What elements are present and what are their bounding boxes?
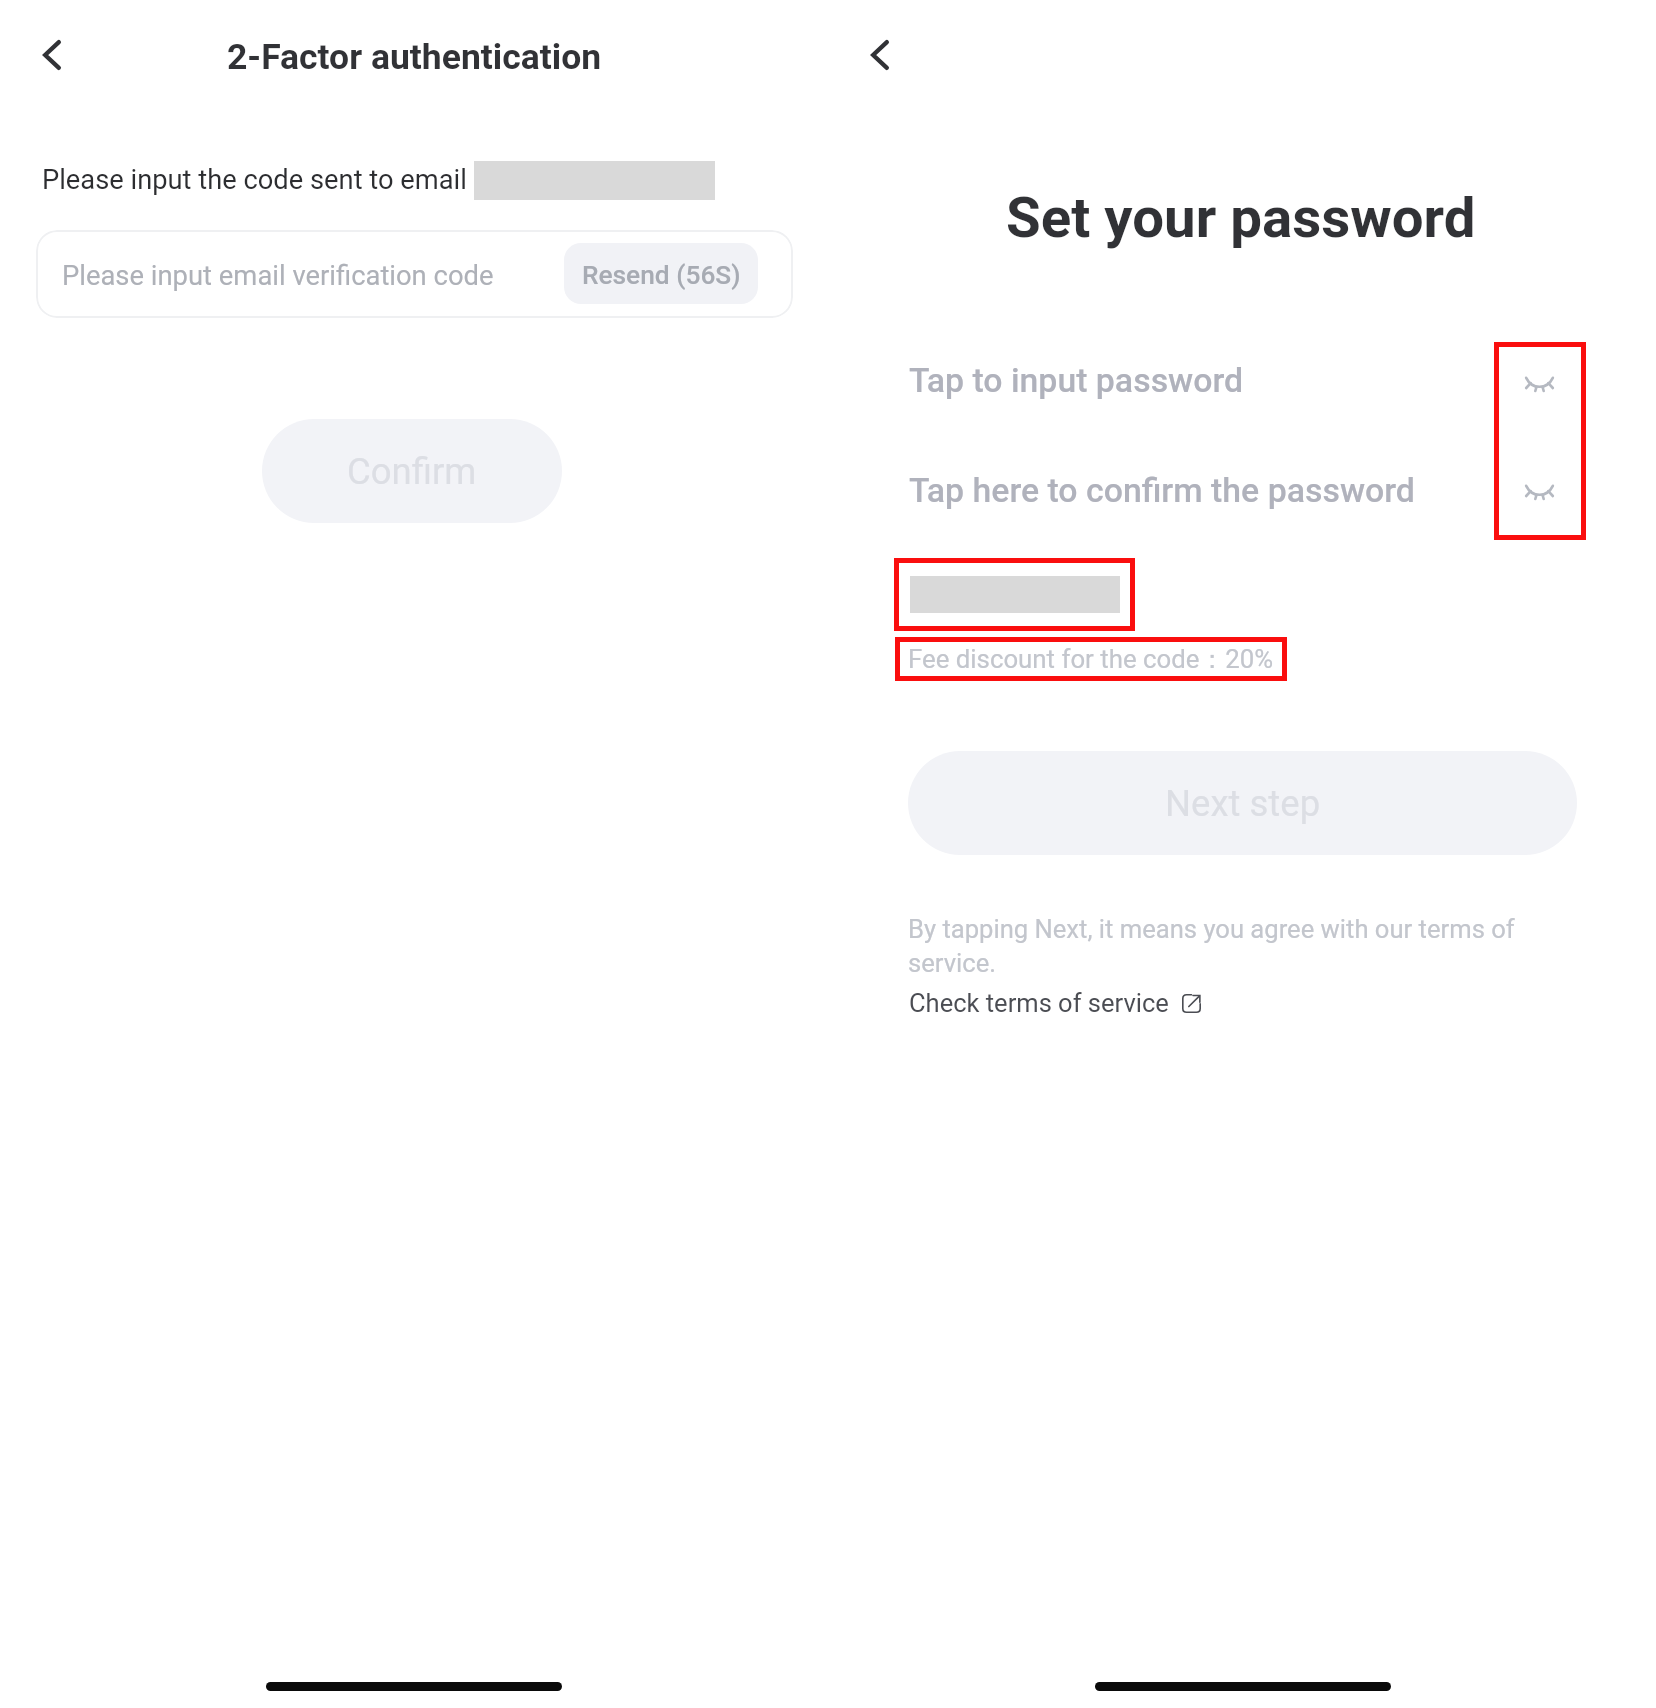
button[interactable]: Confirm <box>262 419 562 523</box>
staticText: By tapping Next, it means you agree with… <box>908 914 1533 978</box>
button[interactable]: Show confirm password <box>1507 463 1571 519</box>
button[interactable]: Back <box>28 26 76 84</box>
staticText: Please input email verification code <box>62 260 494 292</box>
button[interactable]: Check terms of service <box>909 984 1201 1022</box>
button[interactable]: Please input email verification code <box>36 230 793 318</box>
staticText: 2-Factor authentication <box>227 36 602 78</box>
button[interactable]: Tap to input password <box>909 350 1489 412</box>
staticText: Fee discount for the code：20% <box>908 643 1274 676</box>
button[interactable]: Back <box>856 26 904 84</box>
button[interactable]: Show password <box>1507 355 1571 411</box>
button[interactable]: Next step <box>908 751 1577 855</box>
staticText: Please input the code sent to email <box>42 164 467 196</box>
staticText: Resend (56S) <box>582 260 741 291</box>
staticText: Tap here to confirm the password <box>909 471 1415 511</box>
staticText: Next step <box>1165 782 1321 825</box>
button[interactable]: Resend (56S) <box>564 243 758 304</box>
staticText: Set your password <box>1006 185 1476 251</box>
button[interactable]: Tap here to confirm the password <box>909 460 1489 522</box>
staticText: Check terms of service <box>909 988 1169 1018</box>
staticText: Confirm <box>347 450 477 493</box>
staticText: Tap to input password <box>909 361 1244 401</box>
